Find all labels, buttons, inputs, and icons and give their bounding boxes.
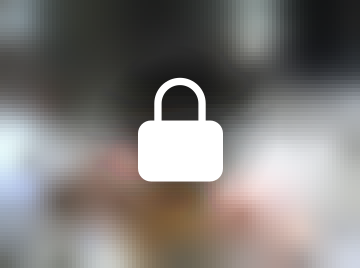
button[interactable]: Unlock (0, 0, 360, 268)
